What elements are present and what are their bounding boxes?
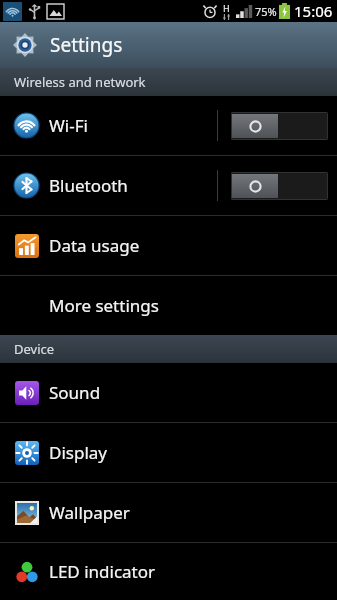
button[interactable]: Sound <box>0 363 337 422</box>
button[interactable]: Wallpaper <box>0 483 337 542</box>
staticText: 15:06 <box>294 1 333 21</box>
button[interactable]: Wi-Fi <box>0 96 337 155</box>
staticText: Settings <box>50 32 123 58</box>
staticText: Display <box>49 441 337 464</box>
staticText: LED indicator <box>49 560 337 583</box>
staticText: Device <box>14 340 55 358</box>
staticText: Wireless and network <box>14 73 146 91</box>
button[interactable]: Toggle Bluetooth <box>217 156 328 215</box>
staticText: Bluetooth <box>49 174 217 197</box>
button[interactable]: Data usage <box>0 216 337 275</box>
button[interactable]: Bluetooth <box>0 156 337 215</box>
button[interactable]: Toggle Wi-Fi <box>217 96 328 155</box>
staticText: Wi-Fi <box>49 114 217 137</box>
staticText: Sound <box>49 381 337 404</box>
staticText: Data usage <box>49 234 337 257</box>
button[interactable]: Display <box>0 423 337 482</box>
staticText: Wallpaper <box>49 501 337 524</box>
staticText: More settings <box>49 294 337 317</box>
staticText: H <box>223 2 230 14</box>
staticText: 75% <box>255 4 277 19</box>
button[interactable]: More settings <box>0 276 337 335</box>
button[interactable]: LED indicator <box>0 543 337 600</box>
